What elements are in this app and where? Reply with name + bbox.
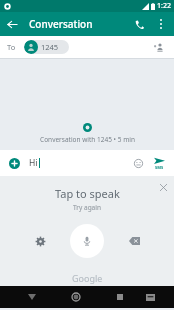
staticText: Try again	[73, 203, 101, 212]
button[interactable]: Back	[23, 288, 41, 306]
button[interactable]: 1245	[24, 40, 69, 54]
button[interactable]: Attach	[6, 155, 22, 171]
button[interactable]: Settings	[30, 231, 50, 251]
staticText: 1245	[41, 42, 59, 52]
staticText: SMS	[155, 165, 164, 170]
staticText: To	[7, 42, 16, 52]
staticText: 1:22	[157, 1, 171, 11]
button[interactable]: Emoji	[130, 155, 146, 171]
button[interactable]: Close	[156, 180, 170, 194]
button[interactable]: Send SMS	[150, 154, 168, 172]
staticText: Tap to speak	[55, 186, 120, 201]
staticText: Conversation with 1245 • 5 min	[40, 135, 135, 144]
staticText: Hi	[29, 157, 38, 169]
button[interactable]: Back	[0, 12, 24, 36]
staticText: Conversation	[29, 17, 93, 31]
button[interactable]: Recents	[111, 288, 129, 306]
button[interactable]: Backspace	[124, 231, 144, 251]
button[interactable]: Call	[128, 13, 150, 35]
button[interactable]: More options	[150, 13, 172, 35]
button[interactable]: Microphone	[70, 224, 104, 258]
button[interactable]: Keyboard	[141, 288, 159, 306]
button[interactable]: Add recipient	[151, 39, 167, 55]
staticText: Google	[72, 272, 103, 284]
button[interactable]: Home	[67, 288, 85, 306]
